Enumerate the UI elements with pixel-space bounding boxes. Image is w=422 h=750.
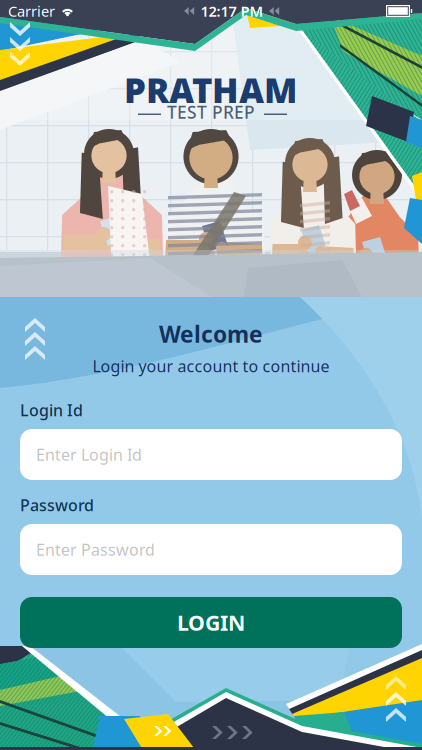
button[interactable]: Enter Login Id [20,429,402,480]
staticText: 12:17 PM [200,1,263,21]
staticText: PRATHAM [124,67,298,113]
staticText: Carrier [8,1,55,21]
staticText: TEST PREP [167,100,255,123]
button[interactable]: LOGIN [20,597,402,648]
staticText: Enter Login Id [36,444,142,465]
button[interactable]: Enter Password [20,524,402,575]
staticText: Enter Password [36,539,155,560]
staticText: LOGIN [177,608,245,637]
staticText: Login Id [20,399,83,421]
staticText: Login your account to continue [92,355,329,377]
staticText: Welcome [159,319,263,349]
staticText: Password [20,494,94,516]
